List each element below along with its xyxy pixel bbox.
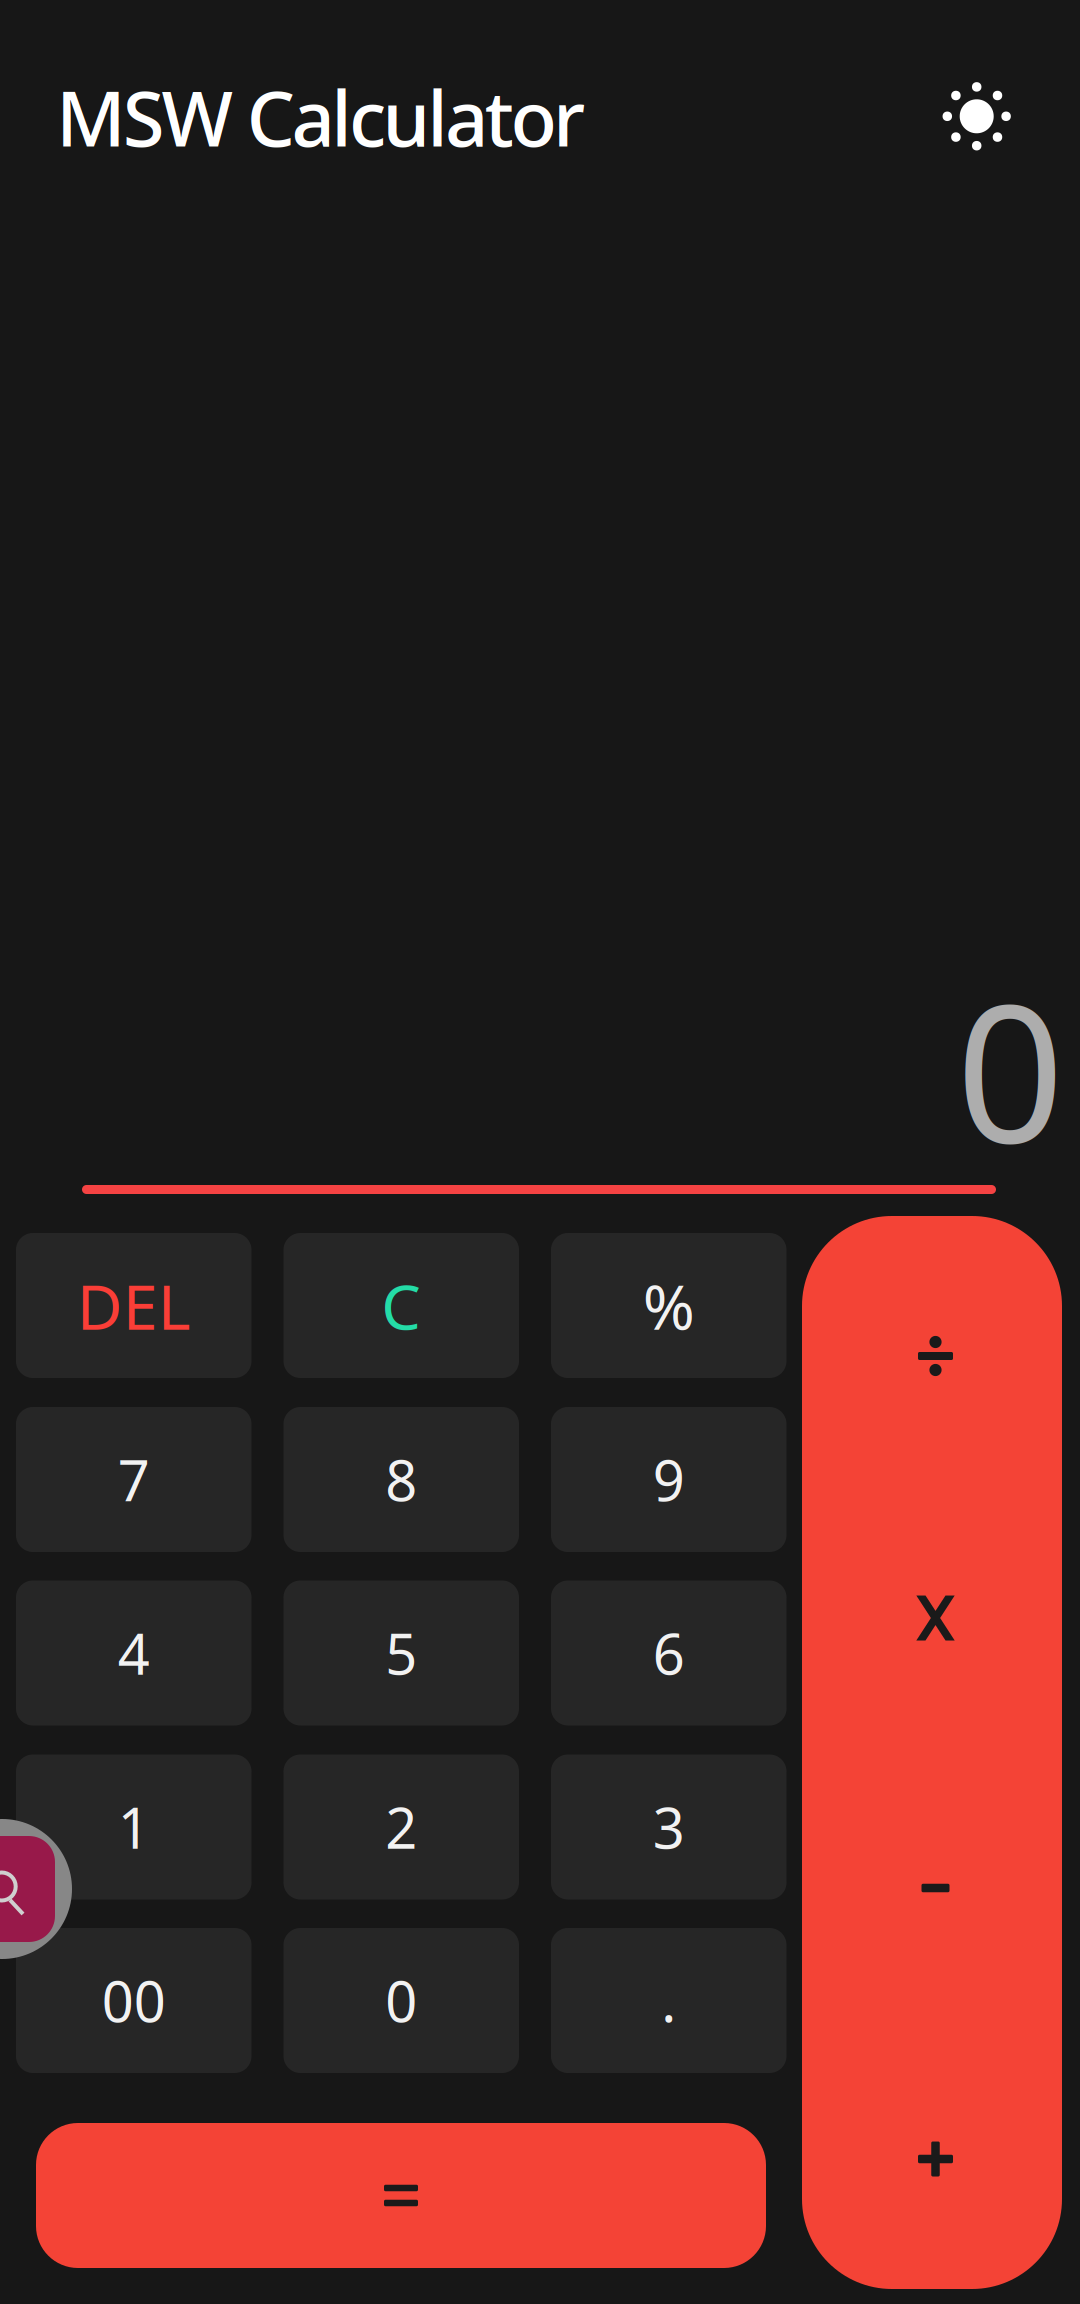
button[interactable]: Toggle theme (929, 68, 1025, 164)
staticText: 0 (956, 943, 1064, 1195)
staticText: 0 (385, 1963, 417, 2038)
staticText: C (381, 1264, 421, 1347)
staticText: 4 (118, 1616, 150, 1690)
staticText: 2 (385, 1790, 417, 1864)
button[interactable]: 4 (16, 1580, 251, 1725)
staticText: 6 (653, 1616, 685, 1690)
staticText: 3 (653, 1790, 685, 1864)
button[interactable]: Equals (36, 2123, 766, 2268)
staticText: 7 (118, 1442, 150, 1517)
button[interactable]: C (283, 1233, 519, 1378)
staticText: 1 (118, 1790, 150, 1864)
staticText: % (643, 1264, 695, 1347)
button[interactable]: 1 (16, 1754, 251, 1899)
button[interactable]: Multiply (802, 1484, 1062, 1752)
button[interactable]: 7 (16, 1407, 251, 1552)
staticText: 9 (653, 1442, 685, 1517)
button[interactable]: 00 (16, 1928, 251, 2073)
staticText: 5 (385, 1616, 417, 1690)
button[interactable]: % (551, 1233, 786, 1378)
button[interactable]: 3 (551, 1754, 786, 1899)
button[interactable]: Divide (802, 1216, 1062, 1484)
button[interactable]: 9 (551, 1407, 786, 1552)
button[interactable]: 6 (551, 1580, 786, 1725)
staticText: 8 (385, 1442, 417, 1517)
button[interactable]: DEL (16, 1233, 251, 1378)
button[interactable]: 8 (283, 1407, 519, 1552)
staticText: DEL (77, 1264, 191, 1347)
button[interactable]: . (551, 1928, 786, 2073)
staticText: . (661, 1963, 676, 2038)
button[interactable]: 5 (283, 1580, 519, 1725)
button[interactable]: Minus (802, 1752, 1062, 2021)
staticText: 00 (102, 1963, 166, 2038)
button[interactable]: Plus (802, 2021, 1062, 2289)
button[interactable]: 0 (283, 1928, 519, 2073)
button[interactable]: Search (0, 1819, 72, 1959)
staticText: MSW Calculator (56, 66, 585, 167)
button[interactable]: 2 (283, 1754, 519, 1899)
